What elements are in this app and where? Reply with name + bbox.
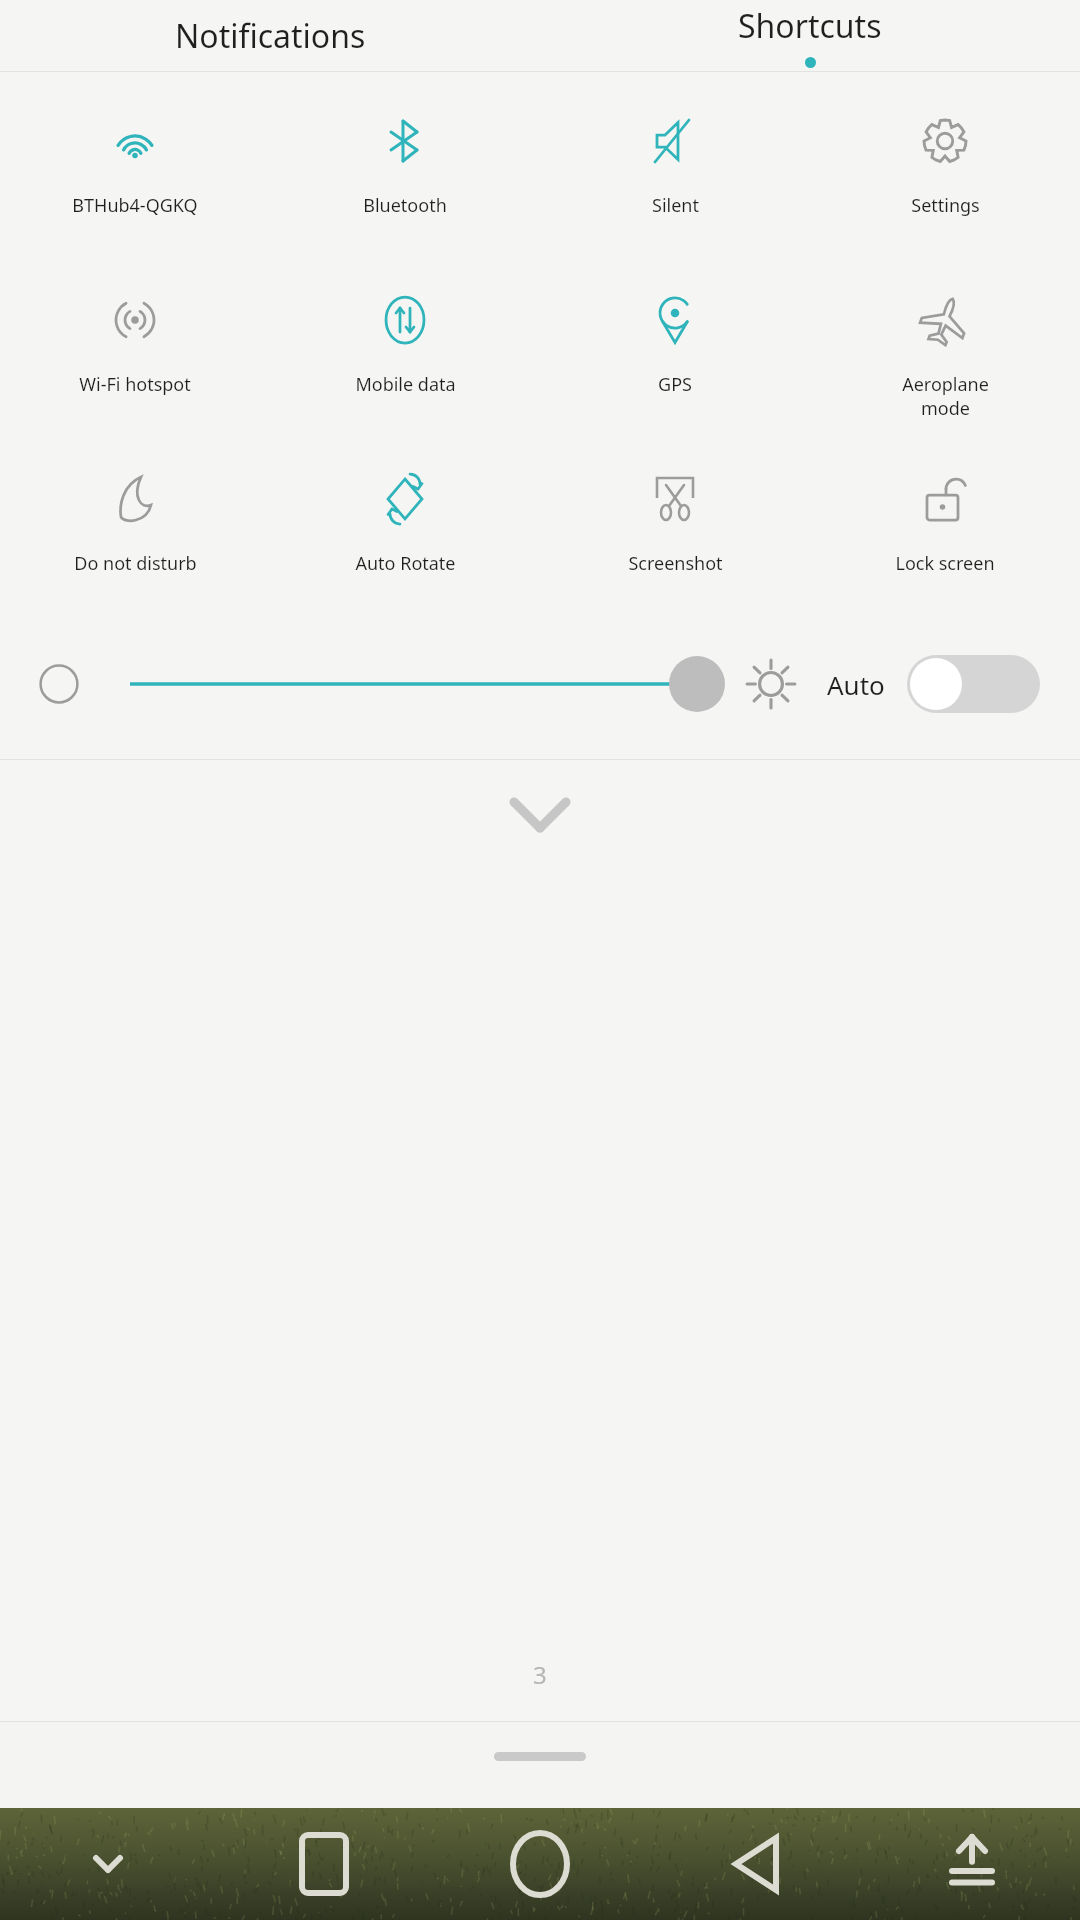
button[interactable]: Notifications bbox=[0, 0, 540, 71]
button[interactable]: GPS bbox=[540, 251, 810, 397]
button[interactable]: Upload bbox=[864, 1808, 1080, 1920]
button[interactable]: Silent bbox=[540, 72, 810, 218]
staticText: 3 bbox=[533, 1658, 547, 1691]
staticText: Bluetooth bbox=[363, 193, 447, 218]
button[interactable]: Back bbox=[648, 1808, 864, 1920]
button[interactable]: Shortcuts bbox=[540, 0, 1080, 71]
staticText: GPS bbox=[658, 372, 692, 397]
button[interactable]: Wi-Fi hotspot bbox=[0, 251, 270, 397]
button[interactable]: Auto Rotate bbox=[270, 430, 540, 576]
button[interactable]: Home bbox=[432, 1808, 648, 1920]
button[interactable] bbox=[36, 661, 82, 707]
staticText: Settings bbox=[911, 193, 980, 218]
button[interactable]: Screenshot bbox=[540, 430, 810, 576]
button[interactable]: Settings bbox=[810, 72, 1080, 218]
staticText: Screenshot bbox=[628, 551, 723, 576]
button[interactable] bbox=[130, 654, 725, 714]
button[interactable]: Do not disturb bbox=[0, 430, 270, 576]
button[interactable]: Bluetooth bbox=[270, 72, 540, 218]
button[interactable]: Brightness bbox=[745, 658, 797, 710]
staticText: Aeroplane mode bbox=[902, 372, 989, 420]
button[interactable]: Collapse bbox=[495, 780, 585, 850]
button[interactable]: Hide bbox=[0, 1808, 216, 1920]
staticText: Do not disturb bbox=[74, 551, 197, 576]
staticText: Notifications bbox=[175, 14, 366, 58]
staticText: Shortcuts bbox=[738, 4, 882, 48]
staticText: Silent bbox=[652, 193, 699, 218]
staticText: Wi-Fi hotspot bbox=[79, 372, 191, 397]
button[interactable]: Auto bbox=[827, 655, 1040, 713]
staticText: Auto Rotate bbox=[355, 551, 456, 576]
staticText: Lock screen bbox=[895, 551, 995, 576]
staticText: BTHub4-QGKQ bbox=[72, 193, 198, 218]
button[interactable]: Aeroplane mode bbox=[810, 251, 1080, 420]
button[interactable]: Recents bbox=[216, 1808, 432, 1920]
button[interactable]: Mobile data bbox=[270, 251, 540, 397]
button[interactable]: BTHub4-QGKQ bbox=[0, 72, 270, 218]
button[interactable]: Lock screen bbox=[810, 430, 1080, 576]
staticText: Mobile data bbox=[355, 372, 456, 397]
staticText: Auto bbox=[827, 667, 885, 702]
